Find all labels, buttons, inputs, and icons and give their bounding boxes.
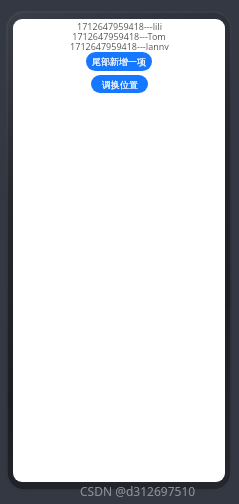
button[interactable]: 尾部新增一项 xyxy=(86,52,152,71)
button[interactable]: 调换位置 xyxy=(91,75,148,93)
staticText: 1712647959418---Tom xyxy=(72,30,166,40)
staticText: 1712647959418---Janny xyxy=(70,40,169,50)
button[interactable]: 1712647959418---lili xyxy=(13,20,225,30)
button[interactable]: 1712647959418---Tom xyxy=(13,30,225,40)
staticText: 1712647959418---lili xyxy=(77,20,162,30)
staticText: CSDN @d312697510 xyxy=(80,483,196,499)
button[interactable]: 1712647959418---Janny xyxy=(13,40,225,50)
staticText: 调换位置 xyxy=(102,79,138,90)
staticText: 尾部新增一项 xyxy=(92,56,146,67)
